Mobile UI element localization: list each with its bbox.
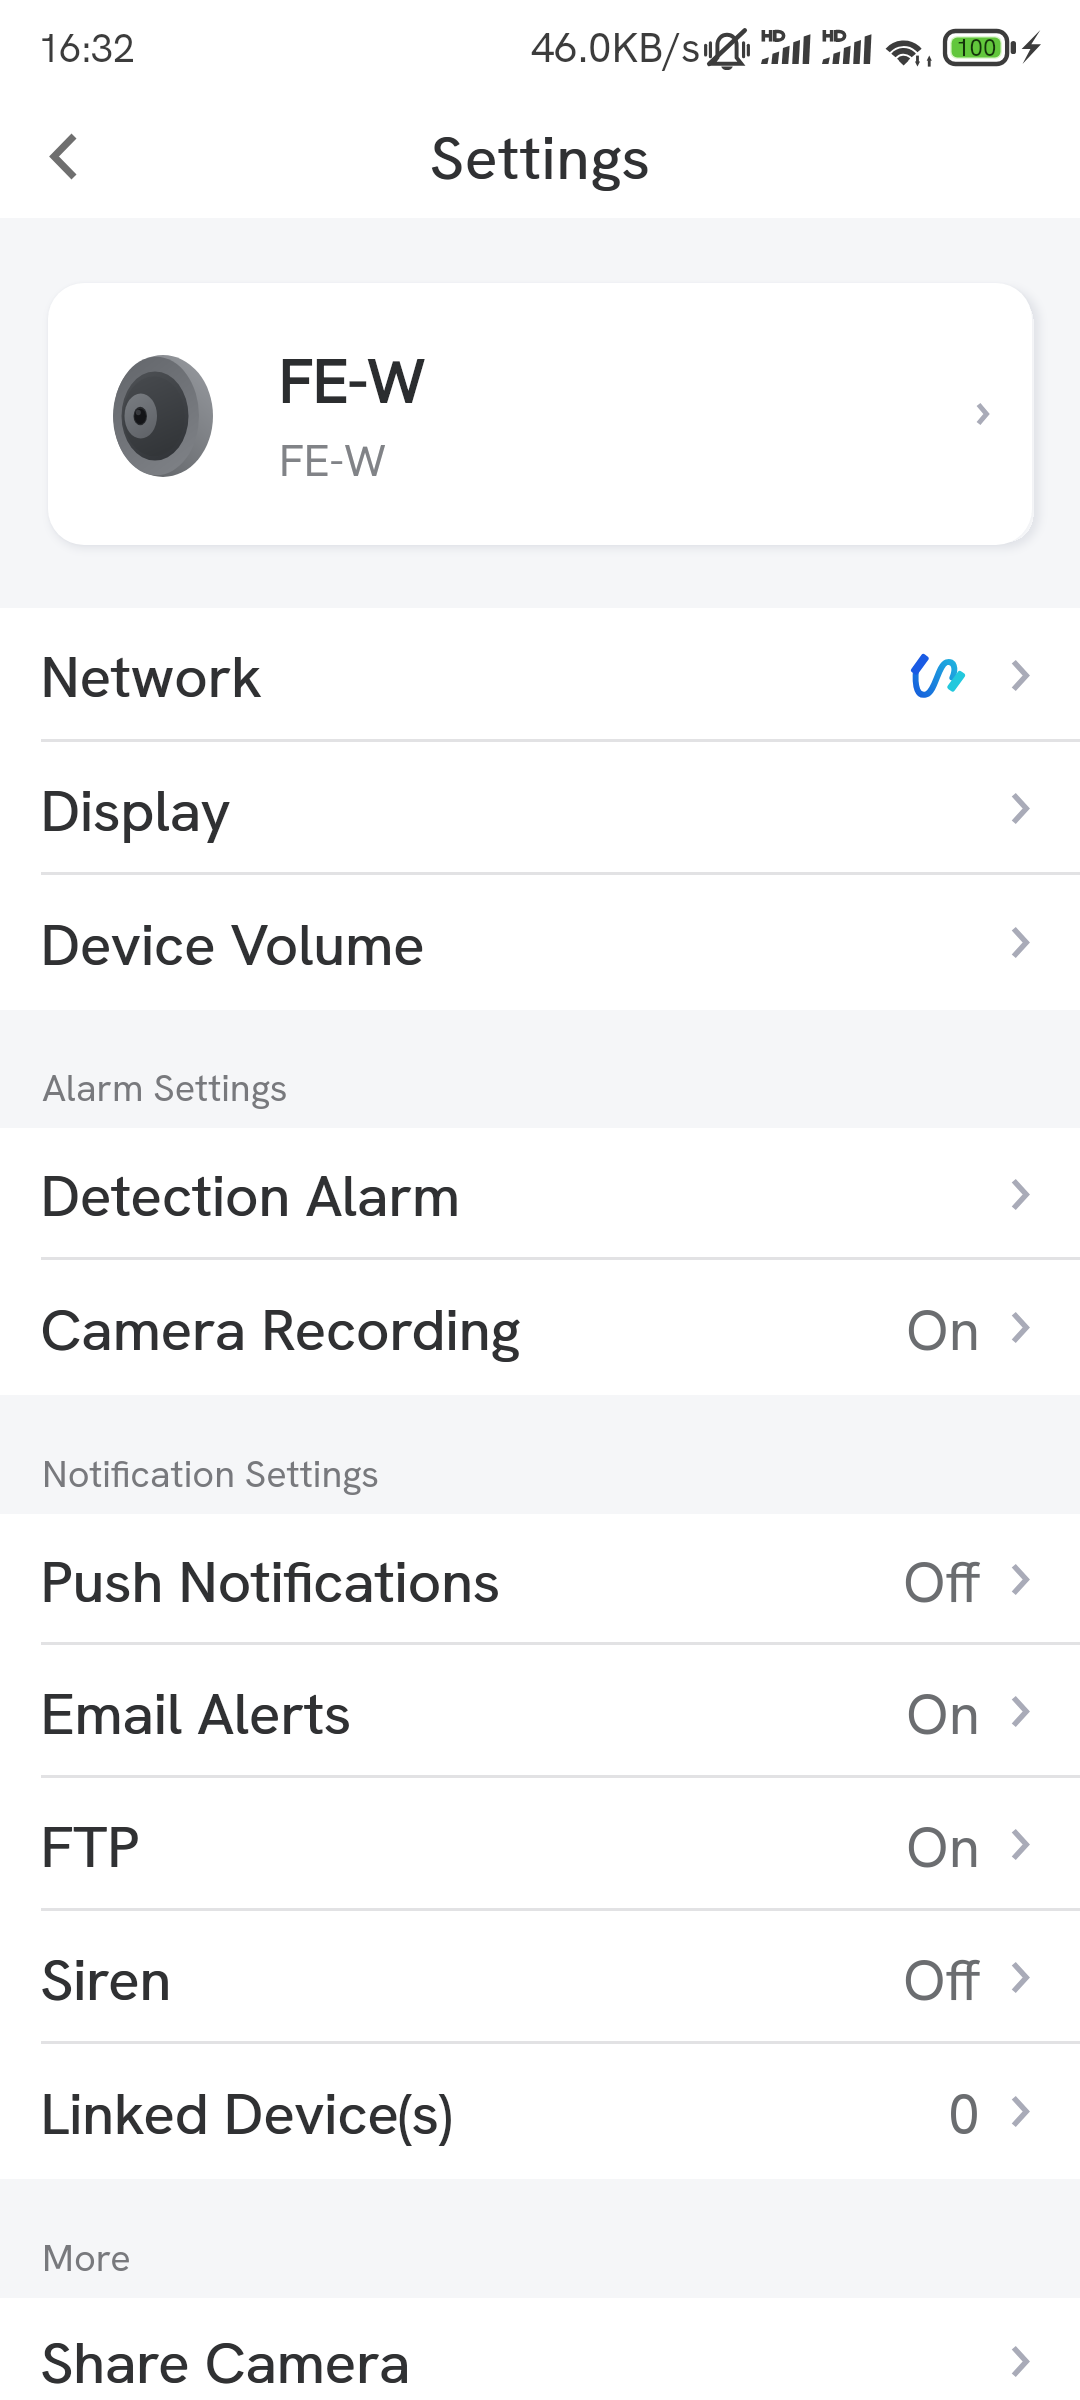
staticText: 46.0KB/s (531, 20, 701, 75)
staticText: Email Alerts (40, 1676, 351, 1752)
button[interactable]: Network (0, 608, 1080, 742)
staticText: Device Volume (41, 907, 426, 983)
staticText: 100 (956, 32, 997, 63)
button[interactable]: Back (0, 100, 118, 218)
staticText: Display (40, 773, 231, 849)
staticText: Network (40, 639, 262, 715)
staticText: On (906, 1677, 980, 1751)
button[interactable]: Siren (0, 1911, 1080, 2044)
staticText: On (906, 1293, 980, 1367)
staticText: 16:32 (38, 23, 135, 74)
staticText: Display (41, 773, 232, 849)
staticText: Camera Recording (40, 1292, 520, 1368)
staticText: Detection Alarm (40, 1158, 460, 1234)
staticText: Siren (40, 1942, 171, 2018)
button[interactable]: FTP (0, 1778, 1080, 1911)
staticText: On (906, 1810, 980, 1884)
staticText: FTP (40, 1809, 139, 1885)
staticText: More (42, 2233, 131, 2283)
button[interactable]: Linked Device(s) (0, 2044, 1080, 2179)
staticText: 0 (948, 2077, 980, 2151)
staticText: Push Notifications (40, 1544, 500, 1620)
staticText: Notification Settings (42, 1449, 380, 1499)
staticText: Off (903, 1943, 980, 2017)
staticText: Share Camera (41, 2325, 411, 2400)
staticText: Network (41, 639, 263, 715)
staticText: FE-W (279, 432, 387, 489)
staticText: Siren (41, 1942, 172, 2018)
button[interactable]: Camera Recording (0, 1260, 1080, 1395)
staticText: Push Notifications (41, 1544, 501, 1620)
staticText: Linked Device(s) (40, 2076, 452, 2152)
staticText: Camera Recording (41, 1292, 521, 1368)
button[interactable]: FE-W (48, 283, 1032, 545)
staticText: Detection Alarm (41, 1158, 461, 1234)
button[interactable]: Device Volume (0, 875, 1080, 1010)
button[interactable]: Push Notifications (0, 1514, 1080, 1645)
button[interactable]: Email Alerts (0, 1645, 1080, 1778)
staticText: Linked Device(s) (41, 2076, 453, 2152)
staticText: FTP (41, 1809, 140, 1885)
staticText: Share Camera (40, 2325, 410, 2400)
button[interactable]: Share Camera (0, 2298, 1080, 2400)
staticText: Alarm Settings (42, 1063, 288, 1113)
button[interactable]: Display (0, 742, 1080, 875)
staticText: Email Alerts (41, 1676, 352, 1752)
staticText: Settings (430, 119, 652, 197)
staticText: Device Volume (40, 907, 425, 983)
staticText: Off (903, 1545, 980, 1619)
staticText: FE-W (279, 342, 426, 420)
staticText: Settings (429, 119, 651, 197)
button[interactable]: Detection Alarm (0, 1128, 1080, 1260)
